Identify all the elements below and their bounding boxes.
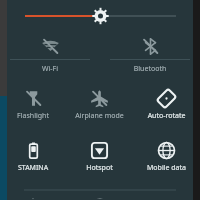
button[interactable]: Mobile data bbox=[133, 137, 200, 189]
button[interactable]: Airplane mode bbox=[66, 85, 133, 137]
button[interactable]: STAMINA bbox=[0, 137, 66, 189]
staticText: Mobile data bbox=[133, 163, 200, 173]
button[interactable]: Hotspot bbox=[66, 137, 133, 189]
staticText: Flashlight bbox=[0, 111, 66, 121]
button[interactable]: Flashlight bbox=[0, 85, 66, 137]
staticText: Auto-rotate bbox=[133, 111, 200, 121]
button[interactable]: Bluetooth bbox=[100, 32, 200, 85]
button[interactable]: Brightness bbox=[0, 0, 200, 32]
staticText: Bluetooth bbox=[100, 64, 200, 74]
staticText: Airplane mode bbox=[66, 111, 133, 121]
button[interactable]: Wi-Fi bbox=[0, 32, 100, 85]
staticText: Hotspot bbox=[66, 163, 133, 173]
button[interactable]: Auto-rotate bbox=[133, 85, 200, 137]
staticText: Wi-Fi bbox=[0, 64, 100, 74]
staticText: STAMINA bbox=[0, 163, 66, 173]
